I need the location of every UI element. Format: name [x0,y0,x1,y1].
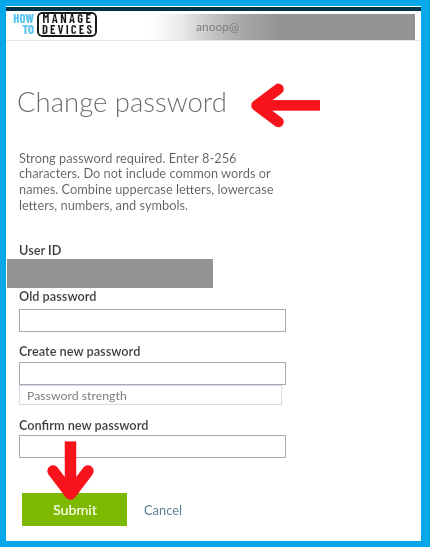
staticText: Create new password [19,343,141,358]
staticText: DEVICES [38,21,98,36]
staticText: Change password [17,85,228,118]
staticText: Strong password required. Enter 8-256 ch… [19,150,274,213]
staticText: TO [11,21,34,36]
button[interactable] [19,362,286,385]
button[interactable]: Submit [22,493,127,526]
staticText: Old password [19,288,97,303]
staticText: anoop@ [196,19,240,33]
staticText: Cancel [144,502,183,517]
button[interactable]: Cancel [144,502,183,517]
staticText: MANAGE [38,10,98,25]
button[interactable] [19,435,286,458]
staticText: Submit [53,501,97,518]
staticText: Confirm new password [19,417,149,432]
staticText: User ID [19,242,62,257]
staticText: HOW [11,10,34,25]
button[interactable] [19,309,286,332]
staticText: Password strength [27,388,127,403]
other: How To Manage Devices [11,12,97,38]
